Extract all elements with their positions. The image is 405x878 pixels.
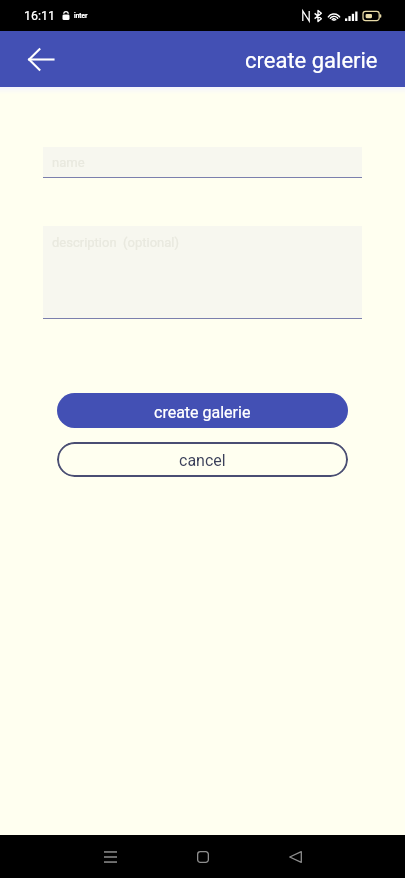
button[interactable]: cancel: [57, 442, 348, 477]
staticText: name: [52, 155, 85, 170]
staticText: create galerie: [245, 48, 378, 74]
staticText: create galerie: [154, 403, 251, 422]
button[interactable]: Back: [271, 835, 319, 878]
button[interactable]: Recent apps: [86, 835, 134, 878]
staticText: 16:11: [24, 8, 56, 23]
button[interactable]: Back: [15, 33, 67, 85]
staticText: description (optional): [52, 235, 179, 250]
button[interactable]: Home: [179, 835, 227, 878]
button[interactable]: create galerie: [57, 393, 348, 428]
staticText: inter: [74, 12, 88, 20]
staticText: cancel: [179, 451, 226, 470]
